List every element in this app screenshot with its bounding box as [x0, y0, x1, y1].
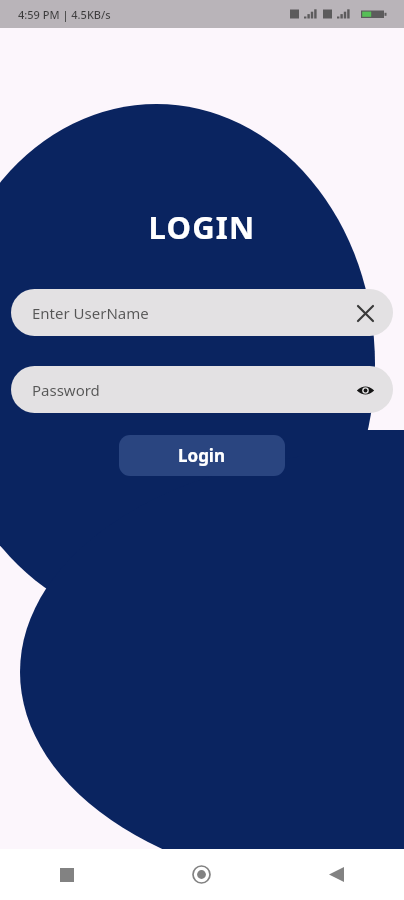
staticText: Enter UserName — [32, 303, 351, 323]
button[interactable]: Password — [11, 366, 393, 413]
staticText: Login — [178, 444, 226, 467]
button[interactable]: Show password — [351, 376, 379, 404]
button[interactable]: Back — [269, 849, 404, 900]
staticText: LOGIN — [0, 206, 404, 248]
staticText: Password — [32, 380, 351, 400]
button[interactable]: Enter UserName — [11, 289, 393, 336]
button[interactable]: Recent apps — [0, 849, 134, 900]
button[interactable]: Clear text — [351, 299, 379, 327]
staticText: 4:59 PM | 4.5KB/s — [18, 7, 111, 22]
button[interactable]: Home — [134, 849, 269, 900]
button[interactable]: Login — [119, 435, 285, 476]
